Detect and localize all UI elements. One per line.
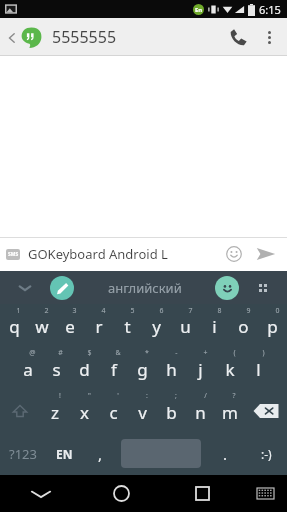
button[interactable]: 6 (142, 304, 171, 346)
button[interactable]: Emoji (221, 241, 247, 267)
staticText: q (9, 315, 20, 338)
staticText: f (111, 358, 117, 381)
staticText: ' (117, 391, 119, 401)
staticText: 5 (130, 306, 135, 316)
staticText: - (175, 348, 178, 358)
staticText: e (65, 315, 75, 338)
button[interactable]: Hide keyboard (0, 271, 50, 304)
button[interactable]: SMS mode (6, 249, 20, 260)
button[interactable]: 8 (200, 304, 229, 346)
staticText: 7 (188, 306, 193, 316)
button[interactable]: Recent apps (162, 475, 243, 512)
staticText: 9 (246, 306, 251, 316)
button[interactable]: ) (244, 346, 273, 389)
staticText: v (138, 401, 147, 424)
button[interactable]: 4 (84, 304, 113, 346)
staticText: * (145, 348, 149, 358)
button[interactable]: 0 (258, 304, 287, 346)
staticText: 2 (44, 306, 49, 316)
button[interactable]: ?123 (0, 432, 45, 475)
staticText: " (88, 391, 91, 401)
button[interactable]: 2 (28, 304, 56, 346)
staticText: 6 (159, 306, 164, 316)
staticText: g (137, 358, 148, 381)
button[interactable]: . (205, 432, 245, 475)
staticText: ( (233, 348, 236, 358)
button[interactable]: * (128, 346, 157, 389)
button[interactable]: + (186, 346, 215, 389)
staticText: 4 (101, 306, 106, 316)
staticText: h (166, 358, 177, 381)
button[interactable]: " (70, 389, 99, 432)
button[interactable]: 3 (56, 304, 84, 346)
staticText: ) (262, 348, 265, 358)
button[interactable]: ; (157, 389, 186, 432)
staticText: . (223, 444, 228, 464)
staticText: ? (232, 391, 236, 401)
button[interactable]: Home (81, 475, 162, 512)
button[interactable]: @ (14, 346, 42, 389)
button[interactable]: 9 (229, 304, 258, 346)
button[interactable]: 5 (113, 304, 142, 346)
button[interactable]: $ (70, 346, 99, 389)
button[interactable]: : (128, 389, 157, 432)
button[interactable]: , (83, 432, 117, 475)
staticText: a (23, 358, 33, 381)
staticText: # (58, 348, 63, 358)
staticText: @ (29, 348, 36, 358)
staticText: n (195, 401, 206, 424)
button[interactable]: 7 (171, 304, 200, 346)
staticText: $ (87, 348, 92, 358)
staticText: En (195, 6, 203, 14)
staticText: u (180, 315, 191, 338)
staticText: k (225, 358, 235, 381)
staticText: r (95, 315, 103, 338)
staticText: 1 (16, 306, 21, 316)
staticText: z (51, 401, 59, 424)
staticText: : (146, 391, 148, 401)
staticText: 8 (217, 306, 222, 316)
button[interactable]: Keyboard menu (239, 271, 287, 304)
button[interactable]: - (157, 346, 186, 389)
button[interactable]: EN (45, 432, 83, 475)
button[interactable]: ' (99, 389, 128, 432)
button[interactable]: :-) (245, 432, 287, 475)
staticText: ; (175, 391, 177, 401)
staticText: EN (56, 446, 73, 462)
staticText: 3 (72, 306, 77, 316)
staticText: 6:15 (259, 2, 281, 17)
button[interactable]: ( (215, 346, 244, 389)
button[interactable]: ! (40, 389, 70, 432)
staticText: y (152, 315, 161, 338)
button[interactable]: Shift (0, 389, 40, 432)
button[interactable]: Backspace (244, 389, 287, 432)
button[interactable]: Switch keyboard (243, 475, 287, 512)
button[interactable]: # (42, 346, 70, 389)
staticText: m (222, 401, 238, 424)
staticText: s (52, 358, 61, 381)
button[interactable]: Emoji keyboard (215, 276, 239, 300)
staticText: & (115, 348, 121, 358)
button[interactable]: Back (0, 475, 81, 512)
staticText: / (204, 391, 207, 401)
staticText: c (109, 401, 118, 424)
button[interactable]: More options (255, 23, 283, 51)
button[interactable]: 1 (0, 304, 28, 346)
staticText: w (35, 315, 49, 338)
button[interactable]: / (186, 389, 215, 432)
button[interactable]: Handwriting (50, 276, 74, 300)
staticText: SMS (8, 251, 19, 258)
button[interactable]: Back (4, 27, 45, 48)
button[interactable]: ? (215, 389, 244, 432)
staticText: :-) (261, 446, 272, 462)
button[interactable]: Call (221, 20, 255, 54)
staticText: + (203, 348, 208, 358)
button[interactable]: & (99, 346, 128, 389)
staticText: ?123 (9, 445, 37, 463)
staticText: l (256, 358, 261, 381)
button[interactable]: Send (251, 239, 281, 269)
staticText: GOKeyboard Android L (28, 245, 221, 263)
staticText: 5555555 (52, 26, 221, 48)
staticText: p (267, 315, 278, 338)
